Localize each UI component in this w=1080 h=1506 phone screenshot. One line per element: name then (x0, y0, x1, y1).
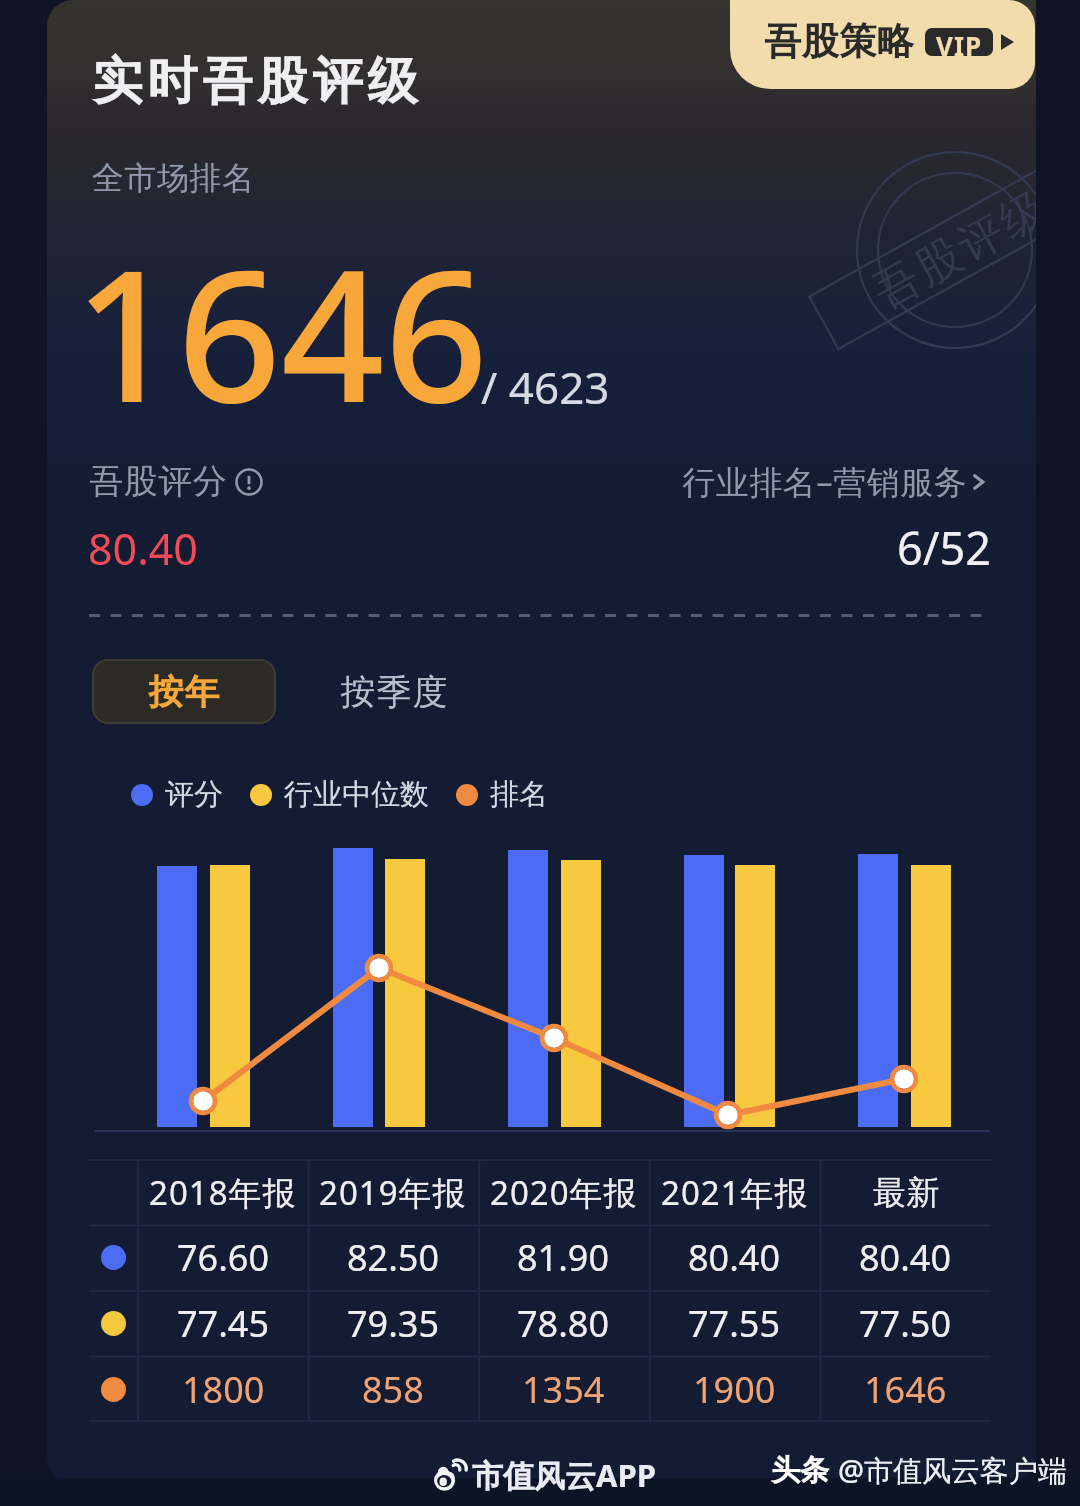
staticText: 排名 (490, 776, 548, 813)
staticText: 评分 (165, 776, 223, 813)
staticText: @市值风云客户端 (838, 1450, 1068, 1490)
staticText: 吾股策略 (764, 18, 914, 65)
staticText: 吾股评分 (89, 460, 227, 503)
staticText: 77.50 (859, 1299, 952, 1348)
staticText: 全市场排名 (92, 158, 255, 198)
staticText: 82.50 (347, 1233, 440, 1282)
staticText: 吾股评级 (862, 179, 1036, 322)
button[interactable]: 按年 (92, 659, 276, 724)
staticText: 78.80 (517, 1299, 610, 1348)
staticText: 81.90 (517, 1233, 610, 1282)
staticText: 2020年报 (490, 1170, 638, 1215)
staticText: 2018年报 (149, 1170, 297, 1215)
staticText: 2021年报 (661, 1170, 809, 1215)
staticText: 1646 (74, 209, 489, 456)
staticText: 80.40 (88, 519, 198, 578)
other: Info (235, 468, 263, 496)
staticText: VIP (936, 28, 983, 56)
staticText: 77.45 (177, 1299, 270, 1348)
staticText: 1354 (522, 1365, 605, 1414)
staticText: 1900 (693, 1365, 776, 1414)
staticText: 858 (362, 1365, 424, 1414)
staticText: 1800 (182, 1365, 265, 1414)
staticText: 80.40 (859, 1233, 952, 1282)
staticText: 80.40 (688, 1233, 781, 1282)
staticText: 按季度 (340, 670, 448, 714)
button[interactable]: 吾股评分说明 (89, 460, 263, 503)
staticText: 按年 (148, 670, 220, 714)
staticText: 2019年报 (319, 1170, 467, 1215)
staticText: 市值风云APP (472, 1454, 656, 1496)
button[interactable]: 行业排名–营销服务 (682, 459, 991, 504)
staticText: 76.60 (177, 1233, 270, 1282)
staticText: 行业排名–营销服务 (682, 459, 967, 504)
staticText: 实时吾股评级 (90, 50, 420, 113)
staticText: 6/52 (897, 517, 991, 578)
staticText: 1646 (864, 1365, 947, 1414)
staticText: 行业中位数 (284, 776, 429, 813)
staticText: 头条 (771, 1452, 829, 1489)
staticText: 最新 (872, 1172, 940, 1214)
staticText: / 4623 (481, 357, 610, 417)
staticText: 79.35 (347, 1299, 440, 1348)
staticText: 77.55 (688, 1299, 781, 1348)
button[interactable]: 按季度 (276, 659, 512, 724)
button[interactable]: 吾股策略 (730, 0, 1035, 89)
